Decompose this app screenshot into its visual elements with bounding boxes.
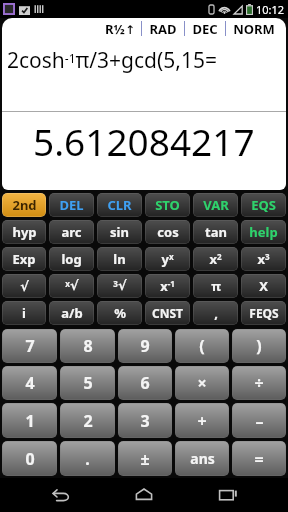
staticText: % [114,304,126,322]
button[interactable]: = [232,441,286,476]
button[interactable]: 0 [2,441,57,476]
staticText: √ [20,279,29,294]
staticText: hyp [12,223,37,241]
button[interactable]: ln [97,247,142,271]
button[interactable]: 4 [2,366,57,400]
button[interactable]: yx [145,247,190,271]
button[interactable]: CNST [145,301,190,325]
staticText: ÷ [254,372,264,394]
button[interactable]: + [175,403,229,438]
staticText: Exp [12,250,36,268]
button[interactable]: Exp [2,247,46,271]
staticText: , [214,304,218,322]
staticText: sin [110,223,129,241]
staticText: x√ [65,278,79,294]
button[interactable]: ÷ [232,366,286,400]
button[interactable]: ) [232,329,286,363]
button[interactable]: 2nd [2,193,46,217]
button[interactable]: EQS [241,193,286,217]
button[interactable]: 1 [2,403,57,438]
button[interactable]: × [175,366,229,400]
button[interactable]: log [49,247,94,271]
staticText: log [61,250,82,268]
button[interactable]: help [241,220,286,244]
button[interactable]: RAD [142,20,184,38]
staticText: 5.612084217 [33,116,255,166]
staticText: R½↑ [105,20,135,38]
button[interactable]: x2 [193,247,238,271]
staticText: 10:12 [256,2,285,17]
button[interactable]: sin [97,220,142,244]
staticText: ( [199,335,205,357]
button[interactable]: 5 [60,366,115,400]
staticText: 3 [140,410,150,432]
staticText: cos [157,223,179,241]
staticText: = [254,448,264,470]
button[interactable]: ± [118,441,172,476]
staticText: FEQS [249,305,279,321]
button[interactable]: i [2,301,46,325]
button[interactable]: 3 [118,403,172,438]
button[interactable]: STO [145,193,190,217]
staticText: EQS [251,196,276,214]
button[interactable]: Back [38,478,84,512]
button[interactable]: % [97,301,142,325]
button[interactable]: x3 [241,247,286,271]
staticText: 2cosh-1π/3+gcd(5,15= [7,46,217,75]
button[interactable]: DEL [49,193,94,217]
staticText: – [255,410,264,432]
button[interactable]: Recents [205,478,251,512]
staticText: help [249,223,278,241]
button[interactable]: a/b [49,301,94,325]
button[interactable]: DEC [185,20,225,38]
staticText: CNST [152,305,183,321]
staticText: x3 [257,250,270,268]
staticText: CLR [107,196,132,214]
button[interactable]: tan [193,220,238,244]
button[interactable]: arc [49,220,94,244]
button[interactable]: VAR [193,193,238,217]
staticText: + [197,410,207,432]
button[interactable]: FEQS [241,301,286,325]
staticText: 1 [25,410,35,432]
button[interactable]: R½↑ [99,20,141,38]
staticText: ans [190,449,215,468]
button[interactable]: √ [2,274,46,298]
button[interactable]: 8 [60,329,115,363]
staticText: π [211,277,221,295]
staticText: ) [256,335,262,357]
button[interactable]: x-1 [145,274,190,298]
staticText: ln [113,250,126,268]
button[interactable]: ( [175,329,229,363]
button[interactable]: X [241,274,286,298]
staticText: . [85,448,90,470]
button[interactable]: . [60,441,115,476]
staticText: 6 [140,372,150,394]
button[interactable]: cos [145,220,190,244]
staticText: arc [61,223,82,241]
staticText: a/b [61,304,83,322]
button[interactable]: 2 [60,403,115,438]
staticText: tan [205,223,227,241]
staticText: i [22,304,26,322]
staticText: STO [155,196,180,214]
staticText: 2 [83,410,93,432]
button[interactable]: x√ [49,274,94,298]
staticText: VAR [203,196,229,214]
button[interactable]: ans [175,441,229,476]
button[interactable]: – [232,403,286,438]
button[interactable]: hyp [2,220,46,244]
button[interactable]: 6 [118,366,172,400]
button[interactable]: CLR [97,193,142,217]
button[interactable]: 7 [2,329,57,363]
button[interactable]: 9 [118,329,172,363]
button[interactable]: Home [121,478,167,512]
button[interactable]: NORM [226,20,282,38]
button[interactable]: π [193,274,238,298]
staticText: x2 [209,250,222,268]
button[interactable]: 3√ [97,274,142,298]
staticText: X [259,277,268,295]
button[interactable]: , [193,301,238,325]
staticText: 0 [25,448,35,470]
staticText: 3√ [113,278,127,294]
